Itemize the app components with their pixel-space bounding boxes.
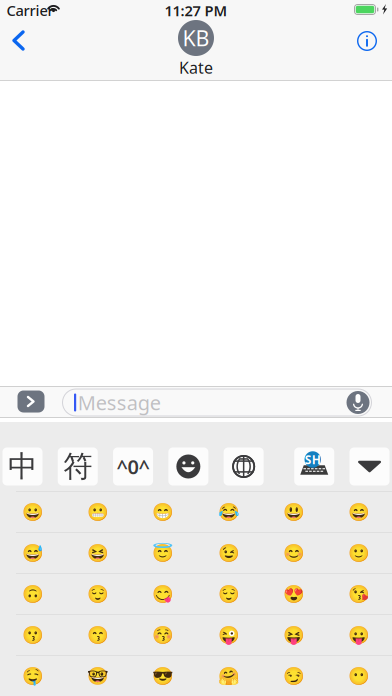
button[interactable]: 🤤 [0,656,65,696]
button[interactable]: 😄 [327,492,392,532]
staticText: 😛 [348,625,370,645]
staticText: 😗 [22,625,44,645]
staticText: 😁 [152,502,174,522]
button[interactable]: 😇 [131,533,196,573]
staticText: 😏 [283,666,305,686]
staticText: Carrier [6,0,53,20]
button[interactable]: 😶 [327,656,392,696]
button[interactable] [224,447,264,485]
button[interactable]: KB [151,20,241,78]
button[interactable]: 😃 [261,492,327,532]
staticText: 😎 [152,666,174,686]
staticText: 中 [8,448,37,484]
staticText: 😊 [283,543,305,563]
button[interactable]: 😅 [0,533,65,573]
staticText: Kate [179,57,213,78]
button[interactable]: 😂 [196,492,261,532]
button[interactable]: 🤓 [65,656,131,696]
button[interactable]: 😆 [65,533,131,573]
button[interactable]: 😚 [131,615,196,655]
button[interactable]: More apps [17,390,44,412]
button[interactable]: ^0^ [113,447,153,485]
button[interactable]: 😌 [65,574,131,614]
staticText: 😌 [218,584,240,604]
button[interactable]: 🤗 [196,656,261,696]
staticText: 😂 [218,502,240,522]
button[interactable]: 😀 [0,492,65,532]
staticText: 😀 [22,502,44,522]
staticText: 11:27 PM [164,1,227,20]
staticText: 😘 [348,584,370,604]
button[interactable]: 🙃 [0,574,65,614]
staticText: 😍 [283,584,305,604]
button[interactable]: 中 [2,447,42,485]
staticText: 🤤 [22,666,44,686]
staticText: 😉 [218,543,240,563]
button[interactable]: 😋 [131,574,196,614]
button[interactable]: 😗 [0,615,65,655]
staticText: KB [182,24,209,52]
button[interactable]: 😍 [261,574,327,614]
staticText: 😙 [87,625,109,645]
button[interactable]: 😙 [65,615,131,655]
staticText: 😚 [152,625,174,645]
button[interactable]: 😬 [65,492,131,532]
button[interactable]: 😌 [196,574,261,614]
button[interactable]: 😏 [261,656,327,696]
staticText: 😶 [348,666,370,686]
staticText: 😌 [87,584,109,604]
button[interactable]: Back [3,20,34,61]
staticText: 符 [63,448,92,484]
button[interactable]: 😜 [196,615,261,655]
staticText: 😃 [283,502,305,522]
button[interactable]: 😊 [261,533,327,573]
staticText: Message [78,389,161,416]
button[interactable] [168,447,208,485]
staticText: 😇 [152,543,174,563]
button[interactable]: 😝 [261,615,327,655]
staticText: ^0^ [116,453,149,480]
staticText: 😬 [87,502,109,522]
button[interactable]: 😁 [131,492,196,532]
staticText: 🤗 [218,666,240,686]
button[interactable]: 😉 [196,533,261,573]
button[interactable]: 😛 [327,615,392,655]
staticText: 😅 [22,543,44,563]
button[interactable]: 符 [58,447,98,485]
staticText: 😄 [348,502,370,522]
staticText: 🙂 [348,543,370,563]
button[interactable]: Details [347,20,387,62]
button[interactable]: SH [294,447,334,485]
staticText: 😆 [87,543,109,563]
button[interactable] [350,447,390,485]
staticText: 😋 [152,584,174,604]
staticText: 😝 [283,625,305,645]
button[interactable]: 😎 [131,656,196,696]
staticText: 🤓 [87,666,109,686]
button[interactable]: 😘 [327,574,392,614]
staticText: 🙃 [22,584,44,604]
staticText: 😜 [218,625,240,645]
staticText: SH [305,451,321,467]
button[interactable]: 🙂 [327,533,392,573]
